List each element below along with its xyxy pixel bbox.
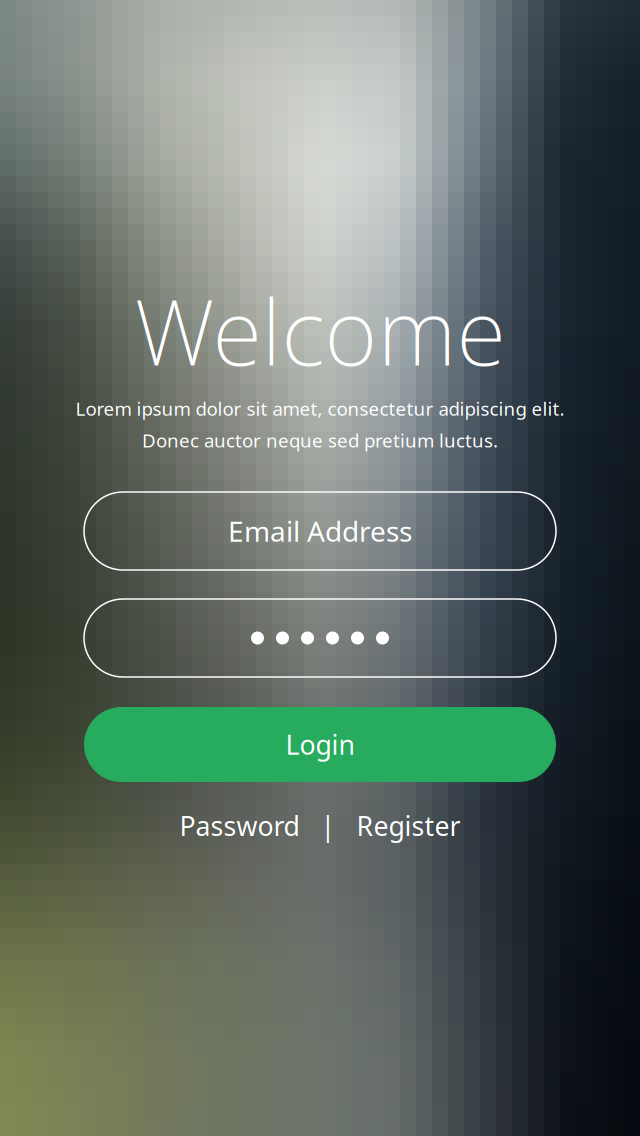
button[interactable]: Login: [84, 707, 556, 782]
staticText: Password: [179, 808, 299, 843]
staticText: Register: [356, 808, 460, 843]
staticText: Donec auctor neque sed pretium luctus.: [142, 428, 498, 453]
staticText: Lorem ipsum dolor sit amet, consectetur …: [75, 396, 564, 421]
button[interactable]: [84, 599, 556, 677]
staticText: Email Address: [228, 512, 412, 550]
staticText: |: [299, 808, 356, 843]
button[interactable]: Password: [179, 808, 299, 843]
staticText: Welcome: [134, 270, 505, 390]
button[interactable]: Email Address: [84, 492, 556, 570]
button[interactable]: Register: [356, 808, 460, 843]
staticText: Login: [285, 727, 354, 762]
